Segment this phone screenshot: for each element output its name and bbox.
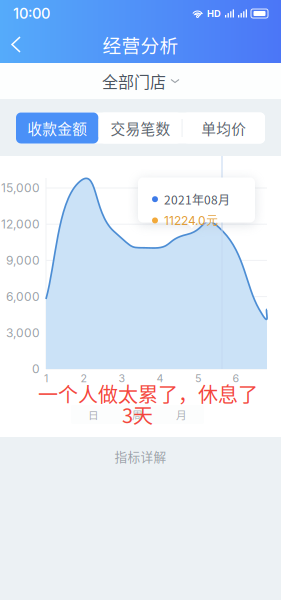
staticText: HD: [207, 8, 221, 19]
staticText: 0: [32, 362, 40, 376]
staticText: 11224.0元: [164, 213, 218, 228]
staticText: 9,000: [6, 253, 40, 268]
staticText: 4: [156, 372, 163, 385]
staticText: 10:00: [13, 5, 50, 22]
staticText: 指标详解: [114, 447, 166, 465]
button[interactable]: 单均价: [183, 112, 265, 143]
staticText: 收款金额: [27, 117, 87, 139]
staticText: 单均价: [201, 117, 246, 139]
staticText: 5: [195, 372, 201, 385]
staticText: 全部门店: [102, 69, 166, 93]
staticText: 3,000: [6, 325, 40, 340]
button[interactable]: 周: [115, 405, 159, 424]
staticText: 12,000: [1, 217, 40, 231]
button[interactable]: 收款金额: [16, 112, 98, 143]
staticText: 6: [232, 372, 239, 385]
staticText: 2: [80, 372, 87, 385]
staticText: 经营分析: [102, 31, 178, 58]
staticText: 周: [132, 407, 143, 422]
staticText: 交易笔数: [110, 117, 170, 139]
staticText: 月: [176, 407, 187, 422]
staticText: 2021年08月: [164, 190, 230, 208]
staticText: 6,000: [6, 289, 40, 304]
staticText: 15,000: [1, 181, 40, 195]
button[interactable]: 返回: [0, 28, 34, 61]
button[interactable]: 月: [159, 405, 203, 424]
button[interactable]: 交易笔数: [99, 112, 182, 143]
staticText: 1: [44, 372, 48, 385]
button[interactable]: 全部门店: [0, 63, 281, 99]
button[interactable]: 指标详解: [0, 437, 281, 475]
staticText: 日: [88, 407, 99, 422]
button[interactable]: 日: [71, 405, 115, 424]
staticText: 3天: [122, 400, 153, 429]
staticText: 一个人做太累了，休息了: [38, 379, 258, 408]
staticText: 3: [118, 372, 125, 385]
